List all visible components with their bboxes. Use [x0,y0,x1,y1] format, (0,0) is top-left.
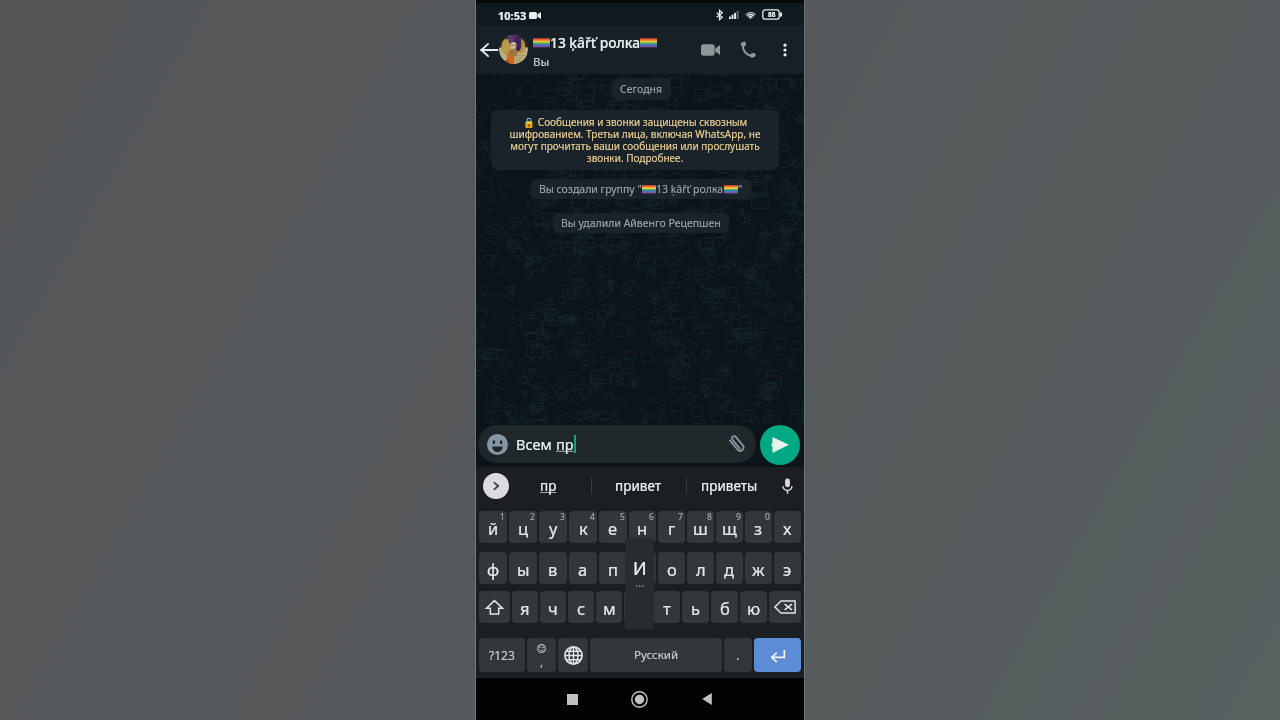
button[interactable]: л [687,552,714,584]
button[interactable]: Backspace [769,591,801,623]
button[interactable]: ф [479,552,507,584]
button[interactable]: Shift [479,591,510,623]
button[interactable]: приветы [689,467,769,505]
staticText: ш [693,517,708,539]
button[interactable]: ?123 [479,638,525,672]
button[interactable]: ы [509,552,537,584]
button[interactable]: ь [682,591,709,623]
button[interactable]: а [569,552,597,584]
button[interactable]: Voice call [732,34,764,66]
button[interactable]: м [596,591,622,623]
button[interactable]: Сегодня [612,78,671,100]
button[interactable]: Video call [694,34,726,66]
staticText: ь [691,597,700,619]
button[interactable]: Русский [590,638,722,672]
staticText: Русский [634,647,679,663]
button[interactable]: ш [687,511,714,543]
button[interactable]: Back [685,678,729,720]
button[interactable]: 🔒 Сообщения и звонки защищены сквозным ш… [491,110,779,170]
staticText: И [633,556,647,581]
staticText: б [720,597,730,619]
staticText: пр [556,434,574,454]
button[interactable]: щ [716,511,743,543]
staticText: т [663,597,671,619]
staticText: … [635,574,645,590]
staticText: Вы создали группу " [539,182,642,196]
button[interactable]: пр [513,467,583,505]
button[interactable]: о [658,552,685,584]
staticText: 9 [736,511,741,523]
button[interactable]: Group photo [499,35,528,64]
staticText: 13 ķâřť ролка [550,33,640,52]
button[interactable]: Send [760,425,800,465]
button[interactable]: Enter [754,638,801,672]
button[interactable]: с [568,591,594,623]
button[interactable]: Voice input [774,473,800,499]
button[interactable]: г [658,511,685,543]
button[interactable]: Всем [478,425,756,463]
button[interactable]: More options [770,35,800,65]
staticText: Всем [516,434,556,454]
staticText: 4 [590,511,595,523]
staticText: д [724,558,735,580]
staticText: 🔒 Сообщения и звонки защищены сквозным ш… [500,115,770,165]
button[interactable]: я [512,591,538,623]
button[interactable]: Switch language [558,638,588,672]
staticText: ю [747,597,761,619]
staticText: 0 [765,511,770,523]
staticText: е [608,517,618,539]
staticText: р [637,558,648,580]
button[interactable]: б [711,591,738,623]
staticText: п [608,558,618,580]
staticText: з [754,517,763,539]
staticText: ?123 [489,647,515,663]
staticText: 1 [500,511,505,523]
button[interactable]: Вы удалили Айвенго Рецепшен [553,213,729,233]
staticText: ч [548,597,558,619]
button[interactable]: к [569,511,597,543]
button[interactable]: р [629,552,656,584]
staticText: х [783,517,792,539]
button[interactable]: привет [598,467,678,505]
button[interactable]: д [716,552,743,584]
button[interactable]: . [724,638,752,672]
staticText: Сегодня [620,82,663,96]
button[interactable]: Expand suggestions [483,473,509,499]
button[interactable]: э [774,552,801,584]
staticText: 2 [530,511,535,523]
button[interactable]: з [745,511,772,543]
button[interactable]: Comma [527,638,556,672]
button[interactable]: х [774,511,801,543]
staticText: ф [487,558,500,580]
button[interactable]: в [539,552,567,584]
button[interactable]: е [599,511,627,543]
button[interactable]: Вы создали группу " [531,179,751,199]
button[interactable]: н [629,511,656,543]
button[interactable]: у [539,511,567,543]
staticText: , [540,653,544,669]
staticText: 88 [768,10,776,19]
button[interactable]: ц [509,511,537,543]
staticText: 5 [620,511,625,523]
staticText: щ [722,517,737,539]
button[interactable]: Back [477,38,501,62]
button[interactable]: ч [540,591,566,623]
button[interactable]: й [479,511,507,543]
staticText: у [549,517,558,539]
button[interactable]: Recents [550,678,594,720]
staticText: с [577,597,586,619]
button[interactable]: п [599,552,627,584]
staticText: Вы удалили Айвенго Рецепшен [561,216,721,230]
staticText: 6 [649,511,654,523]
staticText: Вы [533,54,550,70]
staticText: ы [517,558,530,580]
button[interactable]: Home [617,678,661,720]
staticText: я [520,597,530,619]
staticText: н [637,517,648,539]
button[interactable]: ж [745,552,772,584]
staticText: приветы [701,477,758,495]
button[interactable]: ю [740,591,767,623]
button[interactable]: т [653,591,680,623]
